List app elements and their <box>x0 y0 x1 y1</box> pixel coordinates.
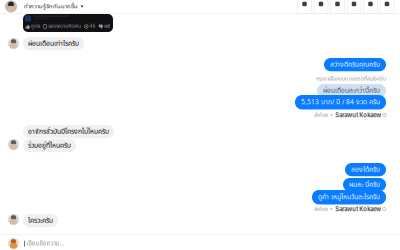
staticText: Sarawut Kokaew <box>335 111 381 119</box>
button[interactable]: Audio call <box>297 0 311 13</box>
button[interactable]: ลองได้ครับ <box>345 163 386 176</box>
button[interactable]: สว่างดีครับคุณครับ <box>324 58 386 71</box>
staticText: 46 <box>90 23 96 30</box>
staticText: Sarawut Kokaew <box>335 205 381 213</box>
button[interactable]: Video call <box>314 0 328 13</box>
staticText: อาจักรชั่วมันมีโครงกไม่ไหมครับ <box>28 127 109 137</box>
button[interactable]: Members <box>347 0 361 13</box>
staticText: กรุณาเลือกแบบ ของรถที่สนใจครับ <box>316 75 386 83</box>
button[interactable]: ผมละ นี่ครับ <box>343 178 386 191</box>
button[interactable]: ผ่อนเดือนละกว่านี้ครับ <box>317 84 386 97</box>
button[interactable]: 46 <box>84 23 96 30</box>
staticText: ทำความรู้จักกันมากขึ้น <box>24 2 78 11</box>
button[interactable]: Search in conversation <box>363 0 377 13</box>
button[interactable]: แชร์ <box>99 23 110 30</box>
button[interactable]: แสดงความคิดเห็น <box>43 23 81 30</box>
staticText: ร่วมอยู่ที่ไหนครับ <box>28 141 71 151</box>
staticText: โครวะครับ <box>28 216 53 226</box>
button[interactable]: ผ่อนเดือนเท่าไรครับ <box>23 37 84 50</box>
button[interactable]: More options <box>380 0 394 13</box>
staticText: ส่งโดย <box>314 111 328 119</box>
staticText: ✦ <box>330 206 334 212</box>
staticText: 5,513 บาท/ ปี / 84 งวด ครับ <box>301 97 380 107</box>
staticText: ถูกใจ <box>31 23 40 30</box>
staticText: ✦ <box>330 112 334 118</box>
button[interactable]: ทำความรู้จักกันมากขึ้น <box>0 0 83 12</box>
staticText: สว่างดีครับคุณครับ <box>330 60 380 70</box>
staticText: ดูคำ เหมู่ไหนวันละไรครับ <box>318 192 380 202</box>
staticText: ผ่อนเดือนละกว่านี้ครับ <box>323 86 380 96</box>
button[interactable]: 5,513 บาท/ ปี / 84 งวด ครับ <box>295 95 386 109</box>
staticText: เขียนข้อความ… <box>27 239 65 248</box>
button[interactable]: ร่วมอยู่ที่ไหนครับ <box>23 139 76 152</box>
button[interactable]: ถูกใจ <box>25 23 40 30</box>
staticText: แสดงความคิดเห็น <box>48 23 81 30</box>
staticText: ลองได้ครับ <box>351 165 380 175</box>
button[interactable]: อาจักรชั่วมันมีโครงกไม่ไหมครับ <box>23 125 114 138</box>
staticText: ส่งโดย <box>314 205 328 213</box>
staticText: ผ่อนเดือนเท่าไรครับ <box>28 39 79 49</box>
button[interactable]: Pin conversation <box>330 0 344 13</box>
staticText: แชร์ <box>104 23 110 30</box>
staticText: ผมละ นี่ครับ <box>349 180 380 190</box>
button[interactable]: ดูคำ เหมู่ไหนวันละไรครับ <box>312 190 386 204</box>
button[interactable]: โครวะครับ <box>23 214 58 227</box>
